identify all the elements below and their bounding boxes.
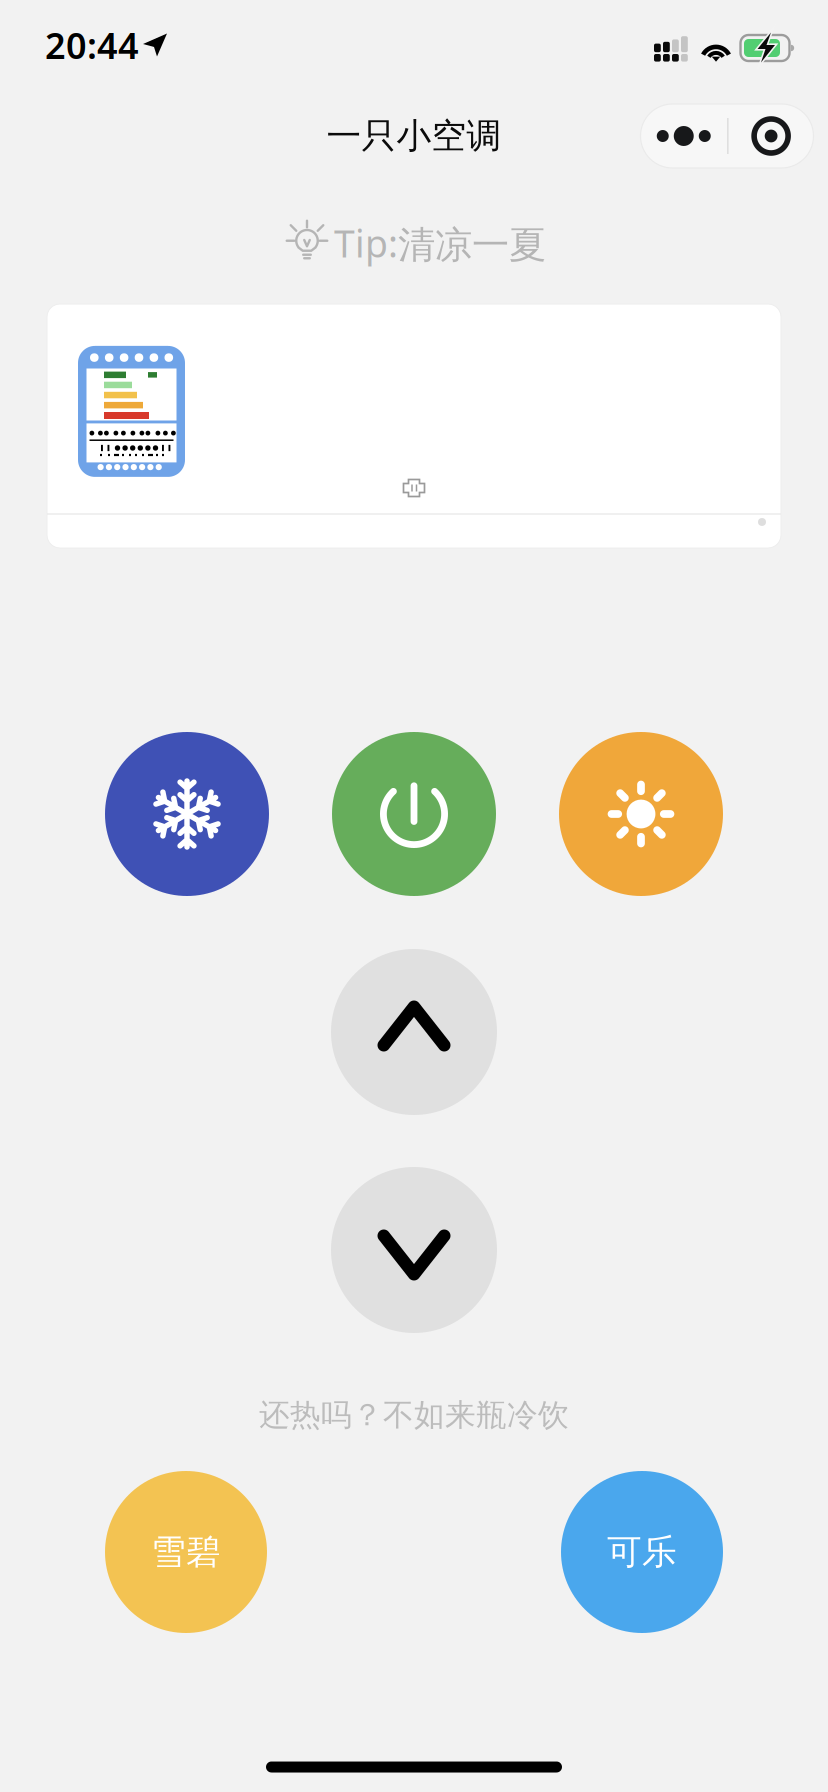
staticText: 20:44	[45, 21, 139, 69]
button[interactable]: Close	[728, 104, 814, 168]
button[interactable]: More	[641, 104, 727, 168]
button[interactable]: 降温	[331, 1167, 497, 1333]
button[interactable]: 雪碧	[105, 1471, 267, 1633]
staticText: 可乐	[607, 1531, 677, 1573]
button[interactable]: 制冷	[105, 732, 269, 896]
button[interactable]: 制热	[559, 732, 723, 896]
button[interactable]: 开关	[332, 732, 496, 896]
button[interactable]: 升温	[331, 949, 497, 1115]
staticText: Tip:清凉一夏	[334, 218, 546, 268]
staticText: 雪碧	[151, 1531, 221, 1573]
staticText: 一只小空调	[326, 115, 501, 157]
button[interactable]: 可乐	[561, 1471, 723, 1633]
staticText: 还热吗？不如来瓶冷饮	[259, 1396, 569, 1434]
